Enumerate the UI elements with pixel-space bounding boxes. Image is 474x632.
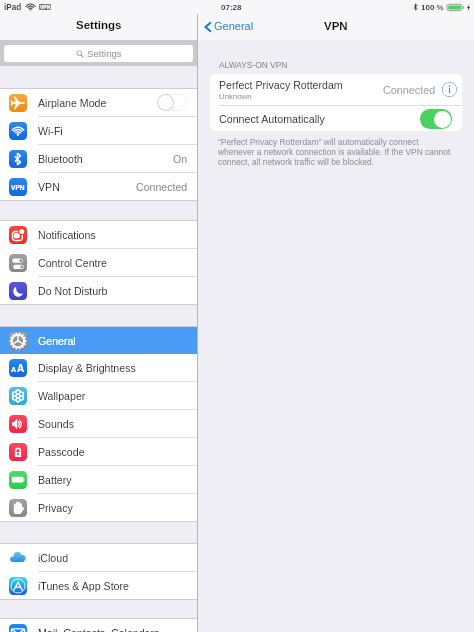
staticText: 100 %	[421, 3, 444, 12]
staticText: Wallpaper	[38, 390, 197, 402]
staticText: Sounds	[38, 418, 197, 430]
staticText: iTunes & App Store	[38, 580, 197, 592]
staticText: Settings	[76, 19, 122, 32]
button[interactable]: Notifications	[0, 221, 197, 248]
staticText: Wi-Fi	[38, 125, 197, 137]
staticText: Connected	[383, 84, 436, 96]
button[interactable]: Bluetooth	[0, 145, 197, 172]
staticText: Battery	[38, 474, 197, 486]
staticText: General	[38, 335, 197, 347]
staticText: Notifications	[38, 229, 197, 241]
staticText: Bluetooth	[38, 153, 173, 165]
button[interactable]: Passcode	[0, 438, 197, 465]
button[interactable]: General	[203, 14, 254, 40]
staticText: Airplane Mode	[38, 97, 157, 109]
button[interactable]: Do Not Disturb	[0, 277, 197, 304]
staticText: Control Centre	[38, 257, 197, 269]
staticText: VPN	[38, 181, 136, 193]
staticText: 07:28	[221, 3, 242, 12]
staticText: On	[173, 153, 188, 165]
button[interactable]: Settings	[4, 45, 193, 62]
staticText: Unknown	[219, 92, 252, 101]
button[interactable]: iCloud	[0, 544, 197, 571]
button[interactable]: Wi-Fi	[0, 117, 197, 144]
staticText: A	[11, 366, 17, 374]
staticText: VPN	[324, 20, 348, 33]
staticText: Display & Brightness	[38, 362, 197, 374]
button[interactable]: iTunes & App Store	[0, 572, 197, 599]
button[interactable]: Connect Automatically	[420, 109, 452, 129]
button[interactable]: Airplane Mode toggle	[157, 94, 187, 111]
button[interactable]: General	[0, 327, 197, 354]
staticText: Perfect Privacy Rotterdam	[219, 79, 343, 91]
staticText: Connect Automatically	[219, 113, 420, 125]
staticText: General	[214, 20, 254, 32]
button[interactable]: More info	[442, 82, 457, 97]
button[interactable]: Airplane Mode	[0, 89, 197, 116]
staticText: Passcode	[38, 446, 197, 458]
staticText: Connected	[136, 181, 188, 193]
button[interactable]: A	[0, 354, 197, 381]
staticText: VPN	[11, 184, 25, 191]
staticText: Mail, Contacts, Calendars	[38, 627, 197, 632]
staticText: Privacy	[38, 502, 197, 514]
button[interactable]: Perfect Privacy Rotterdam	[210, 74, 462, 105]
button[interactable]: Control Centre	[0, 249, 197, 276]
staticText: “Perfect Privacy Rotterdam” will automat…	[218, 137, 453, 167]
button[interactable]: Connect Automatically	[210, 106, 462, 131]
button[interactable]: VPN	[0, 173, 197, 200]
button[interactable]: Battery	[0, 466, 197, 493]
staticText: A	[17, 363, 25, 374]
button[interactable]: Sounds	[0, 410, 197, 437]
button[interactable]: Privacy	[0, 494, 197, 521]
staticText: iPad	[4, 3, 22, 12]
staticText: Do Not Disturb	[38, 285, 197, 297]
staticText: ALWAYS-ON VPN	[219, 60, 288, 69]
staticText: VPN	[40, 4, 51, 10]
staticText: iCloud	[38, 552, 197, 564]
staticText: Settings	[87, 48, 122, 59]
button[interactable]: Mail, Contacts, Calendars	[0, 619, 197, 632]
button[interactable]: Wallpaper	[0, 382, 197, 409]
